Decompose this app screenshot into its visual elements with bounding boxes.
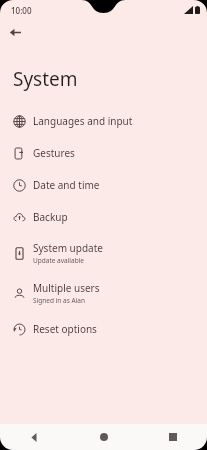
button[interactable]: Home [69, 424, 138, 450]
staticText: System update [33, 241, 103, 255]
button[interactable]: Recent apps [138, 424, 207, 450]
staticText: Reset options [33, 322, 97, 336]
staticText: Gestures [33, 146, 75, 160]
staticText: Signed in as Alan [33, 296, 85, 305]
button[interactable]: Back [0, 424, 69, 450]
staticText: Update available [33, 256, 85, 265]
button[interactable]: Reset options [0, 313, 207, 345]
staticText: Languages and input [33, 114, 133, 128]
staticText: Backup [33, 210, 68, 224]
button[interactable]: Languages and input [0, 105, 207, 137]
button[interactable]: Back [3, 20, 27, 44]
staticText: 10:00 [11, 5, 32, 16]
staticText: System [13, 66, 78, 92]
button[interactable]: Multiple users [0, 273, 207, 313]
button[interactable]: Backup [0, 201, 207, 233]
button[interactable]: Date and time [0, 169, 207, 201]
staticText: Multiple users [33, 281, 100, 295]
button[interactable]: System update [0, 233, 207, 273]
button[interactable]: Gestures [0, 137, 207, 169]
staticText: Date and time [33, 178, 100, 192]
